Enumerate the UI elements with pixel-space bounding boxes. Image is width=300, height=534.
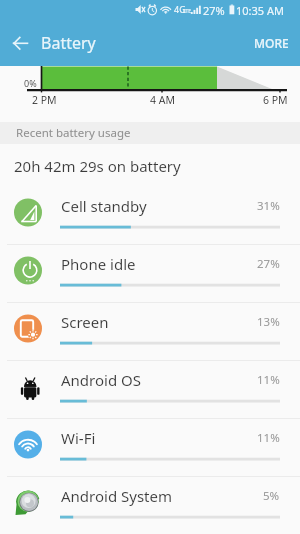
staticText: Recent battery usage <box>16 125 131 141</box>
staticText: 4G <box>174 3 186 15</box>
staticText: Wi-Fi <box>61 428 96 448</box>
button[interactable]: Android System <box>0 476 300 534</box>
staticText: 11% <box>257 430 280 446</box>
button[interactable]: Back <box>0 22 42 64</box>
staticText: 6 PM <box>263 93 288 107</box>
staticText: 27% <box>257 256 280 272</box>
staticText: Battery <box>41 32 96 54</box>
staticText: Phone idle <box>61 254 136 274</box>
button[interactable]: Phone idle <box>0 244 300 302</box>
button[interactable]: MORE <box>240 24 300 62</box>
staticText: 4 AM <box>150 93 175 107</box>
button[interactable]: Screen <box>0 302 300 360</box>
staticText: 0% <box>24 77 37 89</box>
staticText: 20h 42m 29s on battery <box>14 156 181 176</box>
staticText: 11% <box>257 372 280 388</box>
button[interactable]: Cell standby <box>0 186 300 244</box>
staticText: MORE <box>254 35 289 51</box>
staticText: 10:35 AM <box>236 3 284 18</box>
staticText: 27% <box>203 3 225 18</box>
staticText: 13% <box>257 314 280 330</box>
staticText: Android OS <box>61 370 141 390</box>
staticText: LTE <box>183 8 192 15</box>
staticText: Android System <box>61 486 173 506</box>
staticText: 5% <box>263 488 280 504</box>
staticText: 31% <box>257 198 280 214</box>
staticText: 2 PM <box>32 93 57 107</box>
staticText: Cell standby <box>61 196 147 216</box>
button[interactable]: Android OS <box>0 360 300 418</box>
button[interactable]: Wi-Fi <box>0 418 300 476</box>
staticText: Screen <box>61 312 109 332</box>
